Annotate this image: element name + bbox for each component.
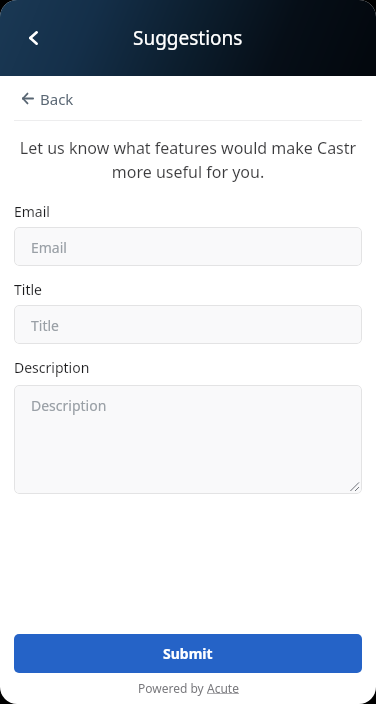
staticText: Title	[31, 316, 59, 335]
button[interactable]: Email	[14, 227, 362, 266]
staticText: Suggestions	[133, 25, 243, 51]
staticText: Description	[31, 396, 107, 415]
staticText: Back	[40, 89, 74, 109]
button[interactable]: Acute	[207, 680, 239, 696]
staticText: Powered by	[138, 680, 207, 696]
staticText: Title	[14, 280, 42, 299]
button[interactable]: Back	[0, 77, 376, 120]
staticText: Email	[31, 238, 67, 257]
button[interactable]: Submit	[14, 634, 362, 673]
staticText: Email	[14, 202, 50, 221]
staticText: Description	[14, 358, 90, 377]
staticText: Let us know what features would make Cas…	[14, 137, 362, 183]
button[interactable]: Title	[14, 305, 362, 344]
button[interactable]: Description	[14, 385, 362, 494]
button[interactable]: Back	[11, 16, 55, 60]
staticText: Submit	[163, 644, 213, 663]
